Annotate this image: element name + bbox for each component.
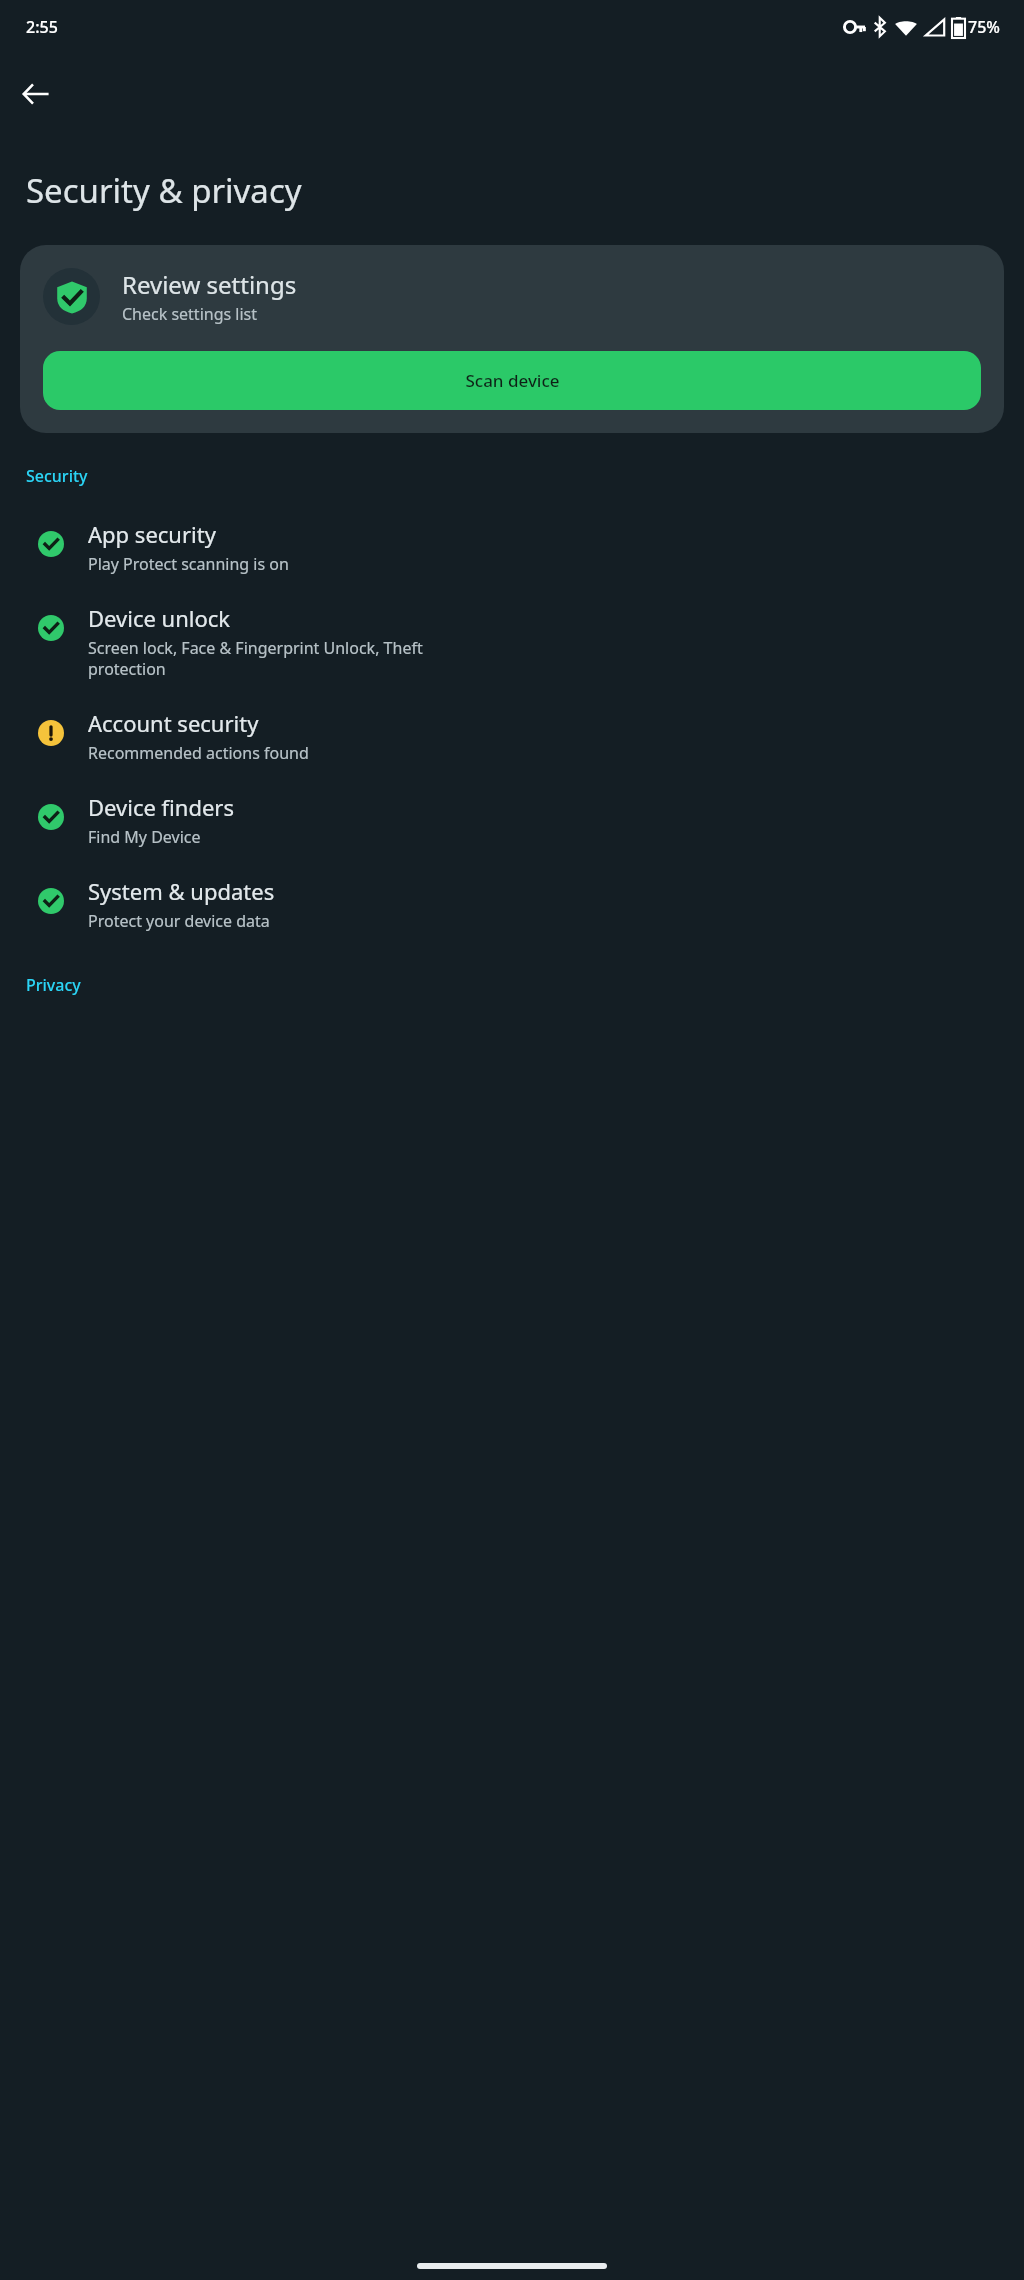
staticText: Find My Device bbox=[88, 826, 201, 848]
staticText: Device finders bbox=[88, 792, 234, 822]
staticText: System & updates bbox=[88, 876, 275, 906]
button[interactable]: Device finders bbox=[0, 778, 1024, 862]
button[interactable]: Back bbox=[8, 66, 64, 122]
staticText: Security bbox=[26, 465, 88, 487]
staticText: 75% bbox=[968, 16, 1000, 38]
button[interactable]: Review settings bbox=[20, 245, 1004, 433]
staticText: Protect your device data bbox=[88, 910, 270, 932]
staticText: Device unlock bbox=[88, 603, 231, 633]
staticText: Recommended actions found bbox=[88, 742, 309, 764]
button[interactable]: App security bbox=[0, 505, 1024, 589]
staticText: Check settings list bbox=[122, 303, 258, 325]
staticText: Screen lock, Face & Fingerprint Unlock, … bbox=[88, 637, 423, 680]
staticText: Privacy bbox=[26, 974, 81, 996]
staticText: Scan device bbox=[465, 369, 560, 392]
button[interactable]: System & updates bbox=[0, 862, 1024, 946]
staticText: Security & privacy bbox=[26, 168, 302, 213]
button[interactable]: Account security bbox=[0, 694, 1024, 778]
staticText: Play Protect scanning is on bbox=[88, 553, 289, 575]
staticText: Review settings bbox=[122, 268, 297, 301]
staticText: App security bbox=[88, 519, 216, 549]
staticText: 2:55 bbox=[26, 16, 58, 38]
button[interactable]: Scan device bbox=[43, 351, 981, 410]
button[interactable]: Device unlock bbox=[0, 589, 1024, 694]
staticText: Account security bbox=[88, 708, 259, 738]
